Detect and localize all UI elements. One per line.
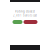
staticText: 2,481 ballots cast [13,14,37,17]
staticText: Voting closed [15,10,35,13]
